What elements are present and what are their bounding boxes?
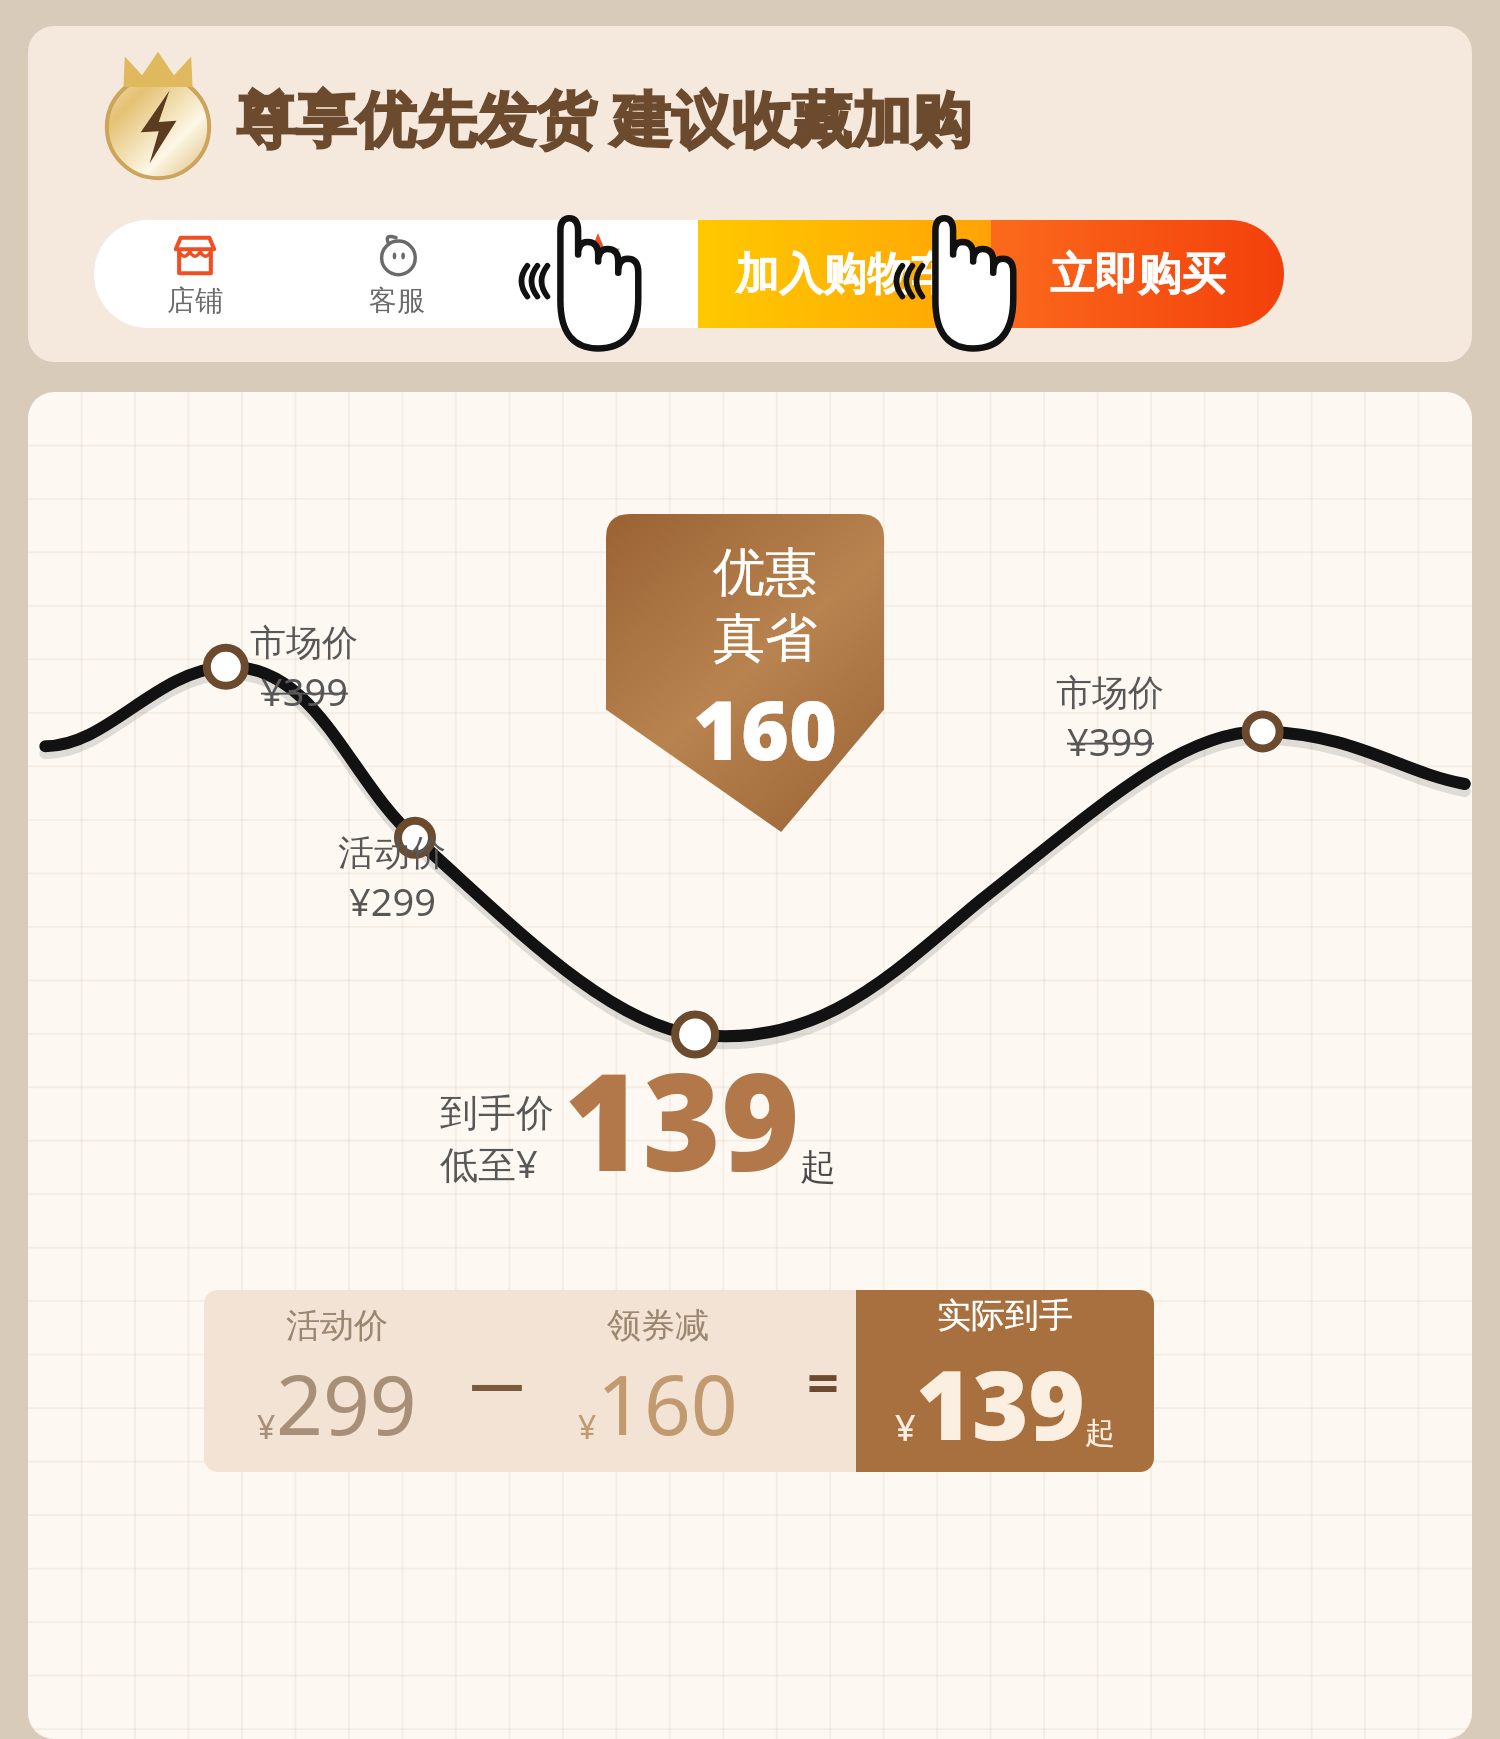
staticText: 客服: [369, 283, 425, 318]
staticText: ¥: [578, 1405, 597, 1449]
button[interactable]: 加入购物车: [698, 220, 991, 328]
staticText: ¥399: [1067, 715, 1154, 767]
button[interactable]: 已收藏: [497, 220, 698, 328]
staticText: 实际到手: [937, 1294, 1073, 1337]
staticText: 优惠: [713, 540, 817, 606]
staticText: ¥299: [349, 875, 436, 927]
staticText: 真省: [713, 606, 817, 672]
staticText: 活动价: [338, 830, 446, 875]
staticText: ¥: [257, 1405, 276, 1449]
staticText: 低至¥: [440, 1137, 538, 1189]
staticText: 139: [564, 1028, 800, 1211]
staticText: 尊享优先发货 建议收藏加购: [236, 77, 972, 159]
staticText: 299: [276, 1347, 417, 1459]
staticText: 店铺: [167, 283, 223, 318]
staticText: =: [807, 1343, 840, 1419]
staticText: 160: [597, 1347, 738, 1459]
staticText: ¥: [895, 1403, 916, 1452]
staticText: ¥399: [261, 665, 348, 717]
staticText: 139: [916, 1337, 1085, 1468]
staticText: —: [470, 1344, 524, 1418]
staticText: 市场价: [1056, 670, 1164, 715]
button[interactable]: 活动价: [204, 1290, 1154, 1472]
staticText: 到手价: [440, 1089, 554, 1137]
staticText: 起: [800, 1144, 836, 1189]
button[interactable]: 客服: [296, 220, 497, 328]
staticText: 加入购物车: [735, 247, 955, 302]
staticText: 立即购买: [1050, 247, 1226, 302]
button[interactable]: 立即购买: [991, 220, 1284, 328]
button[interactable]: 店铺: [94, 220, 296, 328]
staticText: 市场价: [250, 620, 358, 665]
staticText: 160: [693, 672, 838, 784]
staticText: 活动价: [286, 1304, 388, 1347]
staticText: 领券减: [607, 1304, 709, 1347]
staticText: 已收藏: [556, 283, 640, 318]
staticText: 起: [1085, 1414, 1115, 1452]
